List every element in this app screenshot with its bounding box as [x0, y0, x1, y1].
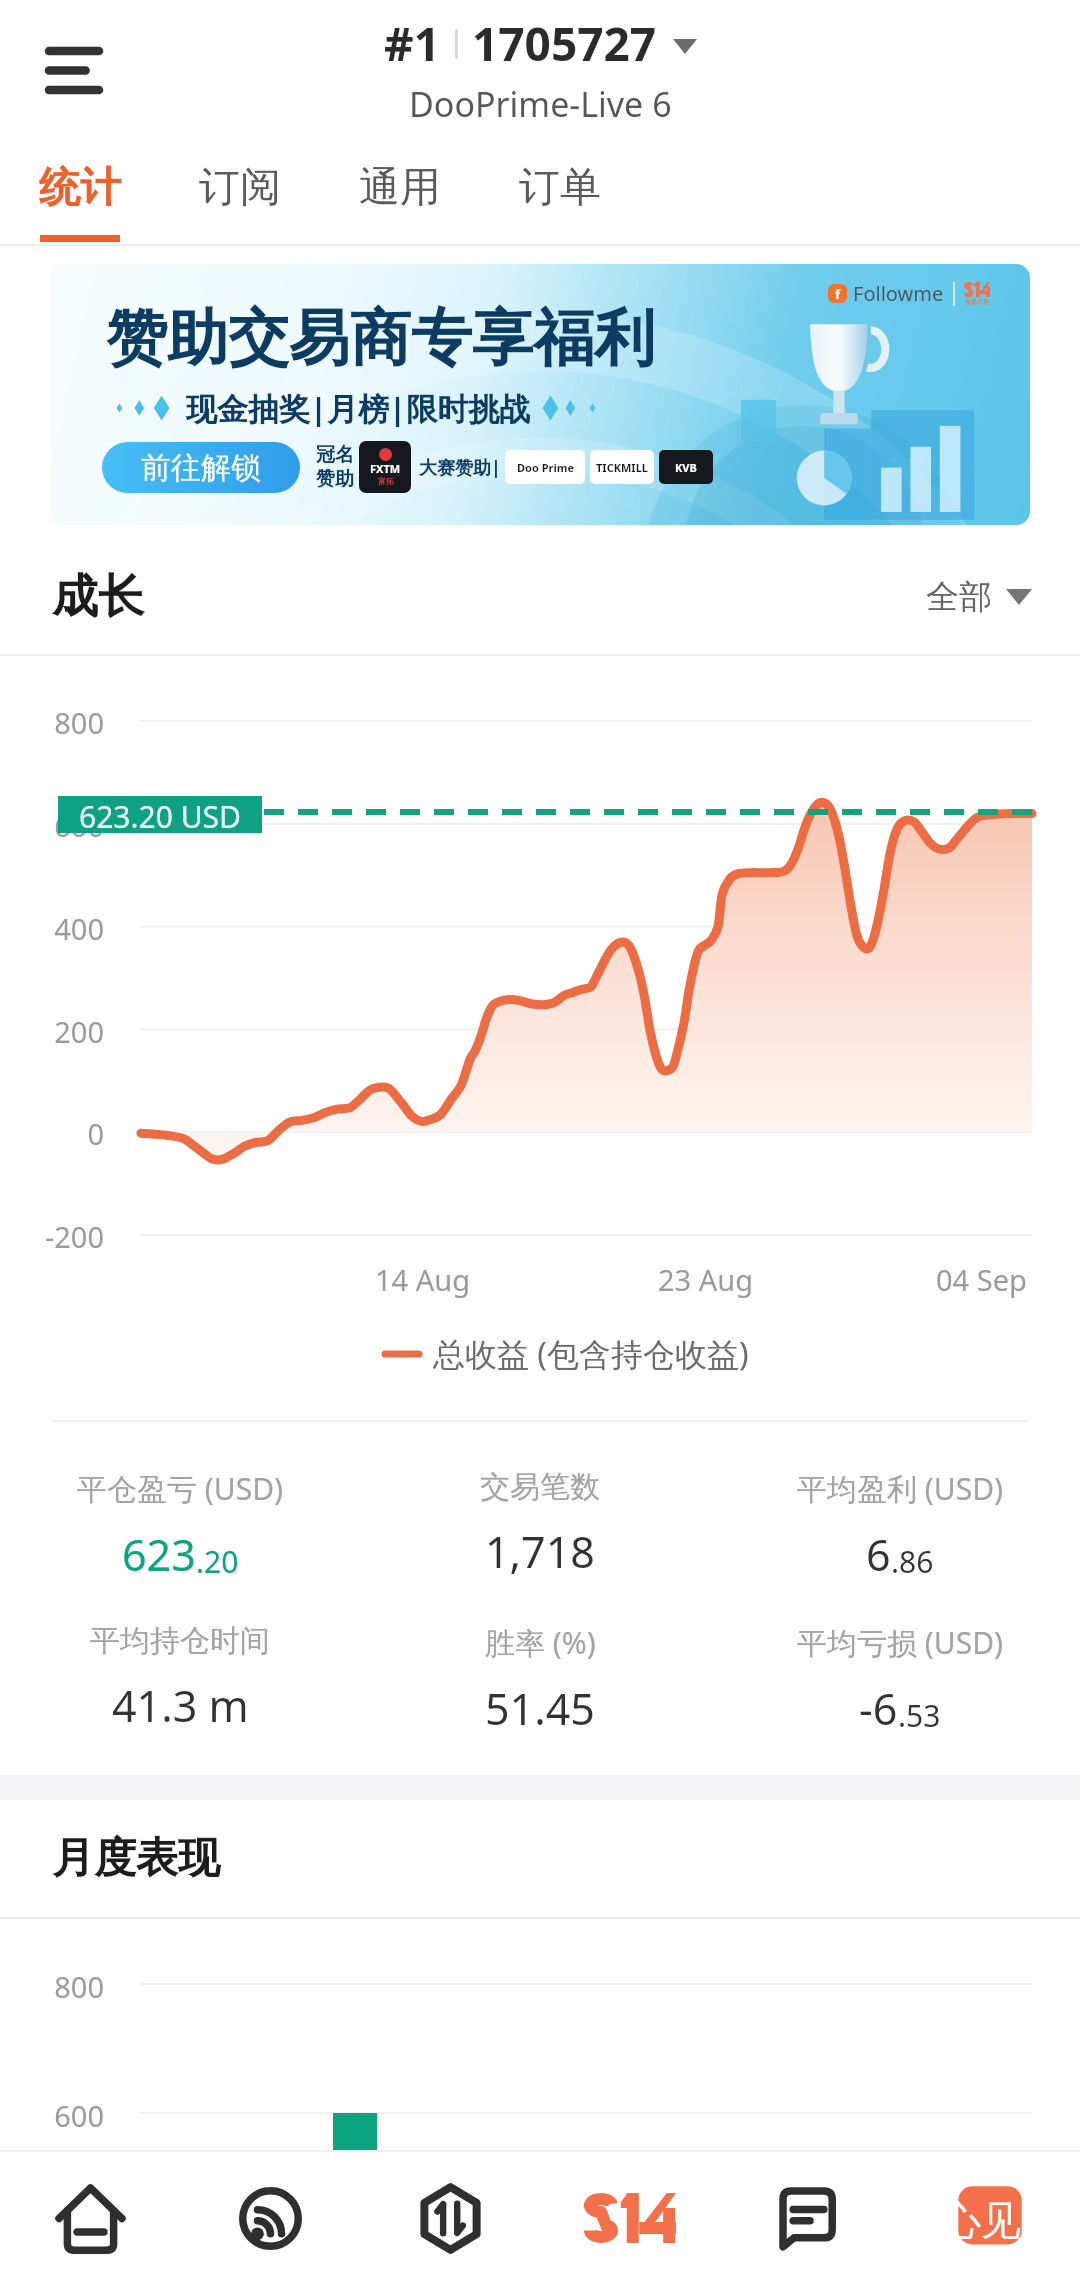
staticText: 51.45 [485, 1679, 595, 1738]
button[interactable]: Messages [720, 2152, 900, 2284]
button[interactable]: Profile [900, 2152, 1080, 2284]
staticText: 平均亏损 (USD) [797, 1622, 1004, 1663]
staticText: 41.3 m [112, 1676, 249, 1735]
staticText: 交易大赛 [965, 298, 989, 306]
staticText: Followme [853, 280, 944, 307]
button[interactable]: #1 [384, 12, 697, 75]
button[interactable]: 全部 [926, 576, 1032, 618]
button[interactable]: Trade [360, 2152, 540, 2284]
staticText: 总收益 (包含持仓收益) [433, 1332, 749, 1376]
staticText: 14 Aug [375, 1260, 471, 1299]
button[interactable]: 通用 [320, 144, 480, 246]
staticText: 胜率 (%) [485, 1622, 596, 1663]
staticText: 0 [87, 1114, 104, 1153]
staticText: f [835, 285, 841, 303]
button[interactable]: Signals [180, 2152, 360, 2284]
staticText: KVB [675, 460, 697, 475]
staticText: #1 [384, 12, 441, 75]
staticText: 623.20 USD [79, 796, 241, 833]
staticText: .53 [898, 1695, 941, 1736]
staticText: 交易笔数 [480, 1468, 600, 1506]
staticText: 冠名 [316, 443, 354, 467]
staticText: 1705727 [472, 12, 657, 75]
staticText: 全部 [926, 576, 992, 618]
staticText: 平均盈利 (USD) [797, 1468, 1004, 1509]
staticText: 1,718 [485, 1522, 595, 1581]
staticText: 04 Sep [936, 1260, 1027, 1299]
staticText: 成长 [52, 568, 144, 626]
staticText: 赞助交易商专享福利 [106, 300, 655, 377]
staticText: 前往解锁 [141, 449, 261, 487]
staticText: 通用 [359, 162, 441, 214]
staticText: 600 [54, 806, 104, 845]
staticText: 平仓盈亏 (USD) [77, 1468, 284, 1509]
staticText: FXTM [370, 461, 401, 476]
staticText: 6 [866, 1525, 891, 1584]
staticText: 600 [54, 2096, 104, 2135]
staticText: -6 [859, 1679, 898, 1738]
staticText: 订单 [519, 162, 601, 214]
staticText: TICKMILL [596, 460, 648, 475]
staticText: 200 [54, 1012, 104, 1051]
button[interactable]: 前往解锁 [102, 442, 300, 493]
staticText: 400 [54, 909, 104, 948]
button[interactable]: 订单 [480, 144, 640, 246]
staticText: DooPrime-Live 6 [409, 81, 672, 127]
staticText: 平均持仓时间 [90, 1622, 270, 1660]
staticText: 800 [54, 1967, 104, 2006]
staticText: .20 [196, 1541, 239, 1582]
staticText: 623 [122, 1525, 196, 1584]
staticText: 800 [54, 703, 104, 742]
staticText: @心见1 [905, 2191, 1044, 2246]
button[interactable]: 统计 [0, 144, 160, 246]
button[interactable]: 订阅 [160, 144, 320, 246]
button[interactable]: Home [0, 2152, 180, 2284]
staticText: 订阅 [199, 162, 281, 214]
staticText: 统计 [39, 162, 121, 214]
button[interactable]: Menu [18, 14, 130, 126]
staticText: 赞助 [316, 467, 354, 491]
staticText: 现金抽奖|月榜|限时挑战 [186, 387, 531, 429]
staticText: 大赛赞助| [419, 455, 501, 480]
staticText: Doo Prime [517, 460, 574, 475]
button[interactable]: 赞助交易商专享福利 [50, 264, 1030, 525]
button[interactable]: S14 [540, 2152, 720, 2284]
staticText: .86 [891, 1541, 934, 1582]
staticText: 23 Aug [658, 1260, 754, 1299]
staticText: -200 [44, 1217, 104, 1256]
staticText: 月度表现 [52, 1832, 220, 1885]
staticText: 富拓 [378, 476, 394, 486]
